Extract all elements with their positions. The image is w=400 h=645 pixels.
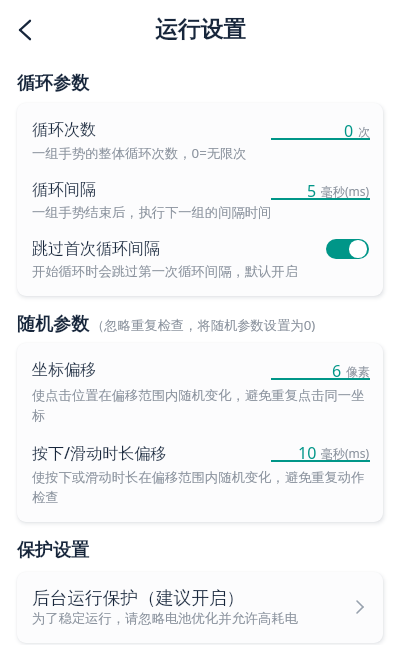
staticText: 为了稳定运行，请忽略电池优化并允许高耗电: [32, 610, 298, 627]
button[interactable]: 跳过首次循环间隔: [17, 230, 383, 289]
staticText: 像素: [346, 364, 370, 379]
staticText: 使按下或滑动时长在偏移范围内随机变化，避免重复动作检查: [32, 469, 370, 506]
staticText: 按下/滑动时长偏移: [32, 442, 167, 462]
button[interactable]: 循环次数: [17, 111, 383, 171]
staticText: 一组手势的整体循环次数，0=无限次: [32, 144, 247, 162]
staticText: 循环间隔: [32, 180, 96, 200]
staticText: 后台运行保护（建议开启）: [32, 587, 245, 607]
staticText: 10: [298, 442, 317, 462]
staticText: 一组手势结束后，执行下一组的间隔时间: [32, 204, 272, 221]
staticText: 循环参数: [17, 72, 89, 95]
staticText: 毫秒(ms): [321, 445, 370, 461]
button[interactable]: 按下/滑动时长偏移: [17, 433, 383, 515]
staticText: （忽略重复检查，将随机参数设置为0): [91, 316, 316, 334]
staticText: 运行设置: [155, 15, 246, 44]
staticText: 坐标偏移: [32, 360, 96, 380]
button[interactable]: 循环间隔: [17, 171, 383, 230]
staticText: 随机参数: [17, 313, 89, 336]
button[interactable]: 后台运行保护（建议开启）: [17, 578, 383, 636]
staticText: 循环次数: [32, 120, 96, 140]
button[interactable]: Toggle skip first interval: [326, 239, 369, 259]
button[interactable]: Back: [5, 10, 45, 50]
staticText: 毫秒(ms): [321, 183, 370, 199]
staticText: 0: [344, 120, 354, 140]
staticText: 开始循环时会跳过第一次循环间隔，默认开启: [32, 263, 298, 280]
staticText: 跳过首次循环间隔: [32, 239, 160, 259]
button[interactable]: 坐标偏移: [17, 351, 383, 433]
staticText: 使点击位置在偏移范围内随机变化，避免重复点击同一坐标: [32, 387, 370, 424]
staticText: 保护设置: [17, 539, 89, 562]
staticText: 5: [307, 180, 317, 200]
staticText: 次: [358, 124, 370, 139]
staticText: 6: [332, 360, 342, 380]
